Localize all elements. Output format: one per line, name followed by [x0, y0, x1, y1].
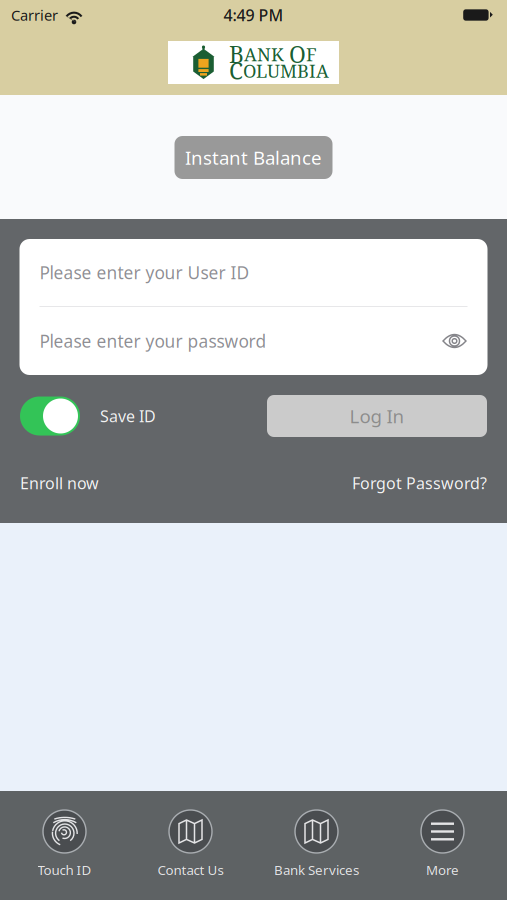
staticText: C [229, 55, 243, 86]
staticText: More [426, 861, 459, 879]
button[interactable]: Instant Balance [174, 136, 332, 179]
staticText: Log In [349, 404, 404, 428]
button[interactable]: Bank Services [253, 791, 379, 900]
button[interactable]: Log In [267, 395, 487, 437]
staticText: B [229, 39, 244, 70]
button[interactable]: Contact Us [127, 791, 253, 900]
button[interactable]: Show password [438, 325, 470, 357]
staticText: Carrier [11, 5, 58, 25]
staticText: 4:49 PM [223, 4, 283, 26]
staticText: OLUMBIA [243, 58, 329, 83]
button[interactable]: Save ID [20, 395, 200, 437]
button[interactable]: Enroll now [20, 472, 99, 494]
button[interactable]: Touch ID [1, 791, 127, 900]
staticText: Contact Us [157, 861, 223, 879]
staticText: Enroll now [20, 472, 99, 494]
staticText: F [306, 42, 317, 67]
staticText: Touch ID [37, 861, 91, 879]
staticText: O [289, 39, 306, 70]
staticText: Forgot Password? [352, 472, 487, 494]
button[interactable]: Forgot Password? [352, 472, 487, 494]
staticText: ANK [244, 42, 284, 67]
staticText: Bank Services [274, 861, 359, 879]
staticText: Please enter your User ID [39, 261, 249, 284]
staticText: Please enter your password [39, 329, 266, 352]
button[interactable]: More [379, 791, 505, 900]
staticText: Save ID [100, 405, 156, 427]
staticText: Instant Balance [185, 145, 322, 170]
